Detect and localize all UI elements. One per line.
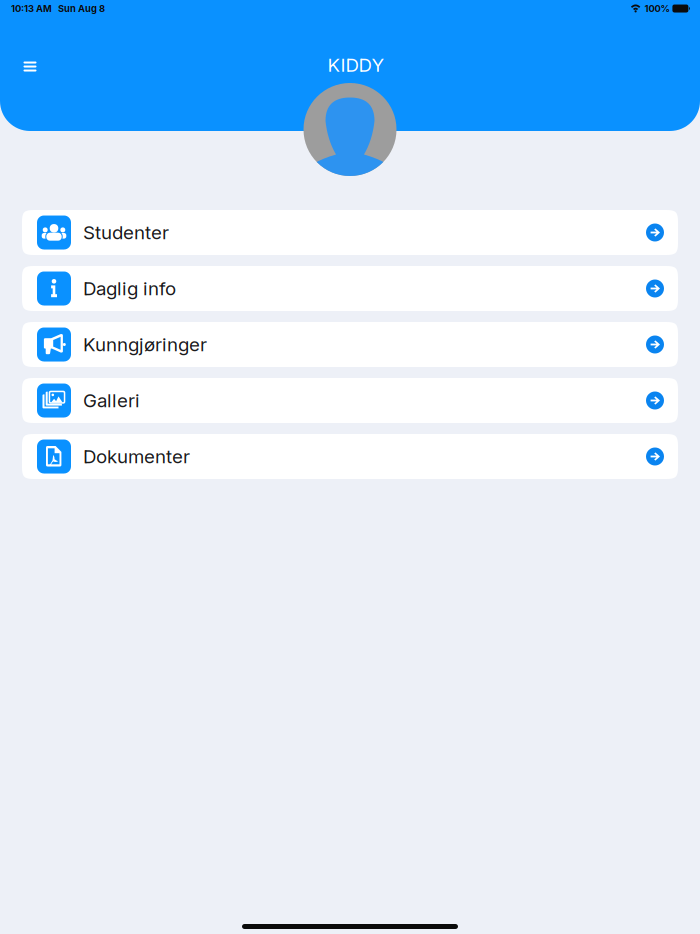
staticText: 10:13 AM bbox=[11, 3, 52, 14]
button[interactable]: Kunngjøringer bbox=[22, 322, 678, 367]
button[interactable]: Menu bbox=[15, 52, 45, 78]
button[interactable]: Studenter bbox=[22, 210, 678, 255]
staticText: Daglig info bbox=[83, 277, 176, 300]
staticText: KIDDY bbox=[327, 54, 384, 76]
staticText: Kunngjøringer bbox=[83, 333, 207, 356]
staticText: Galleri bbox=[83, 389, 140, 412]
button[interactable]: Daglig info bbox=[22, 266, 678, 311]
staticText: Sun Aug 8 bbox=[58, 3, 105, 14]
button[interactable]: Galleri bbox=[22, 378, 678, 423]
staticText: Studenter bbox=[83, 221, 169, 244]
staticText: 100% bbox=[644, 3, 669, 14]
staticText: Dokumenter bbox=[83, 445, 190, 468]
button[interactable]: Dokumenter bbox=[22, 434, 678, 479]
